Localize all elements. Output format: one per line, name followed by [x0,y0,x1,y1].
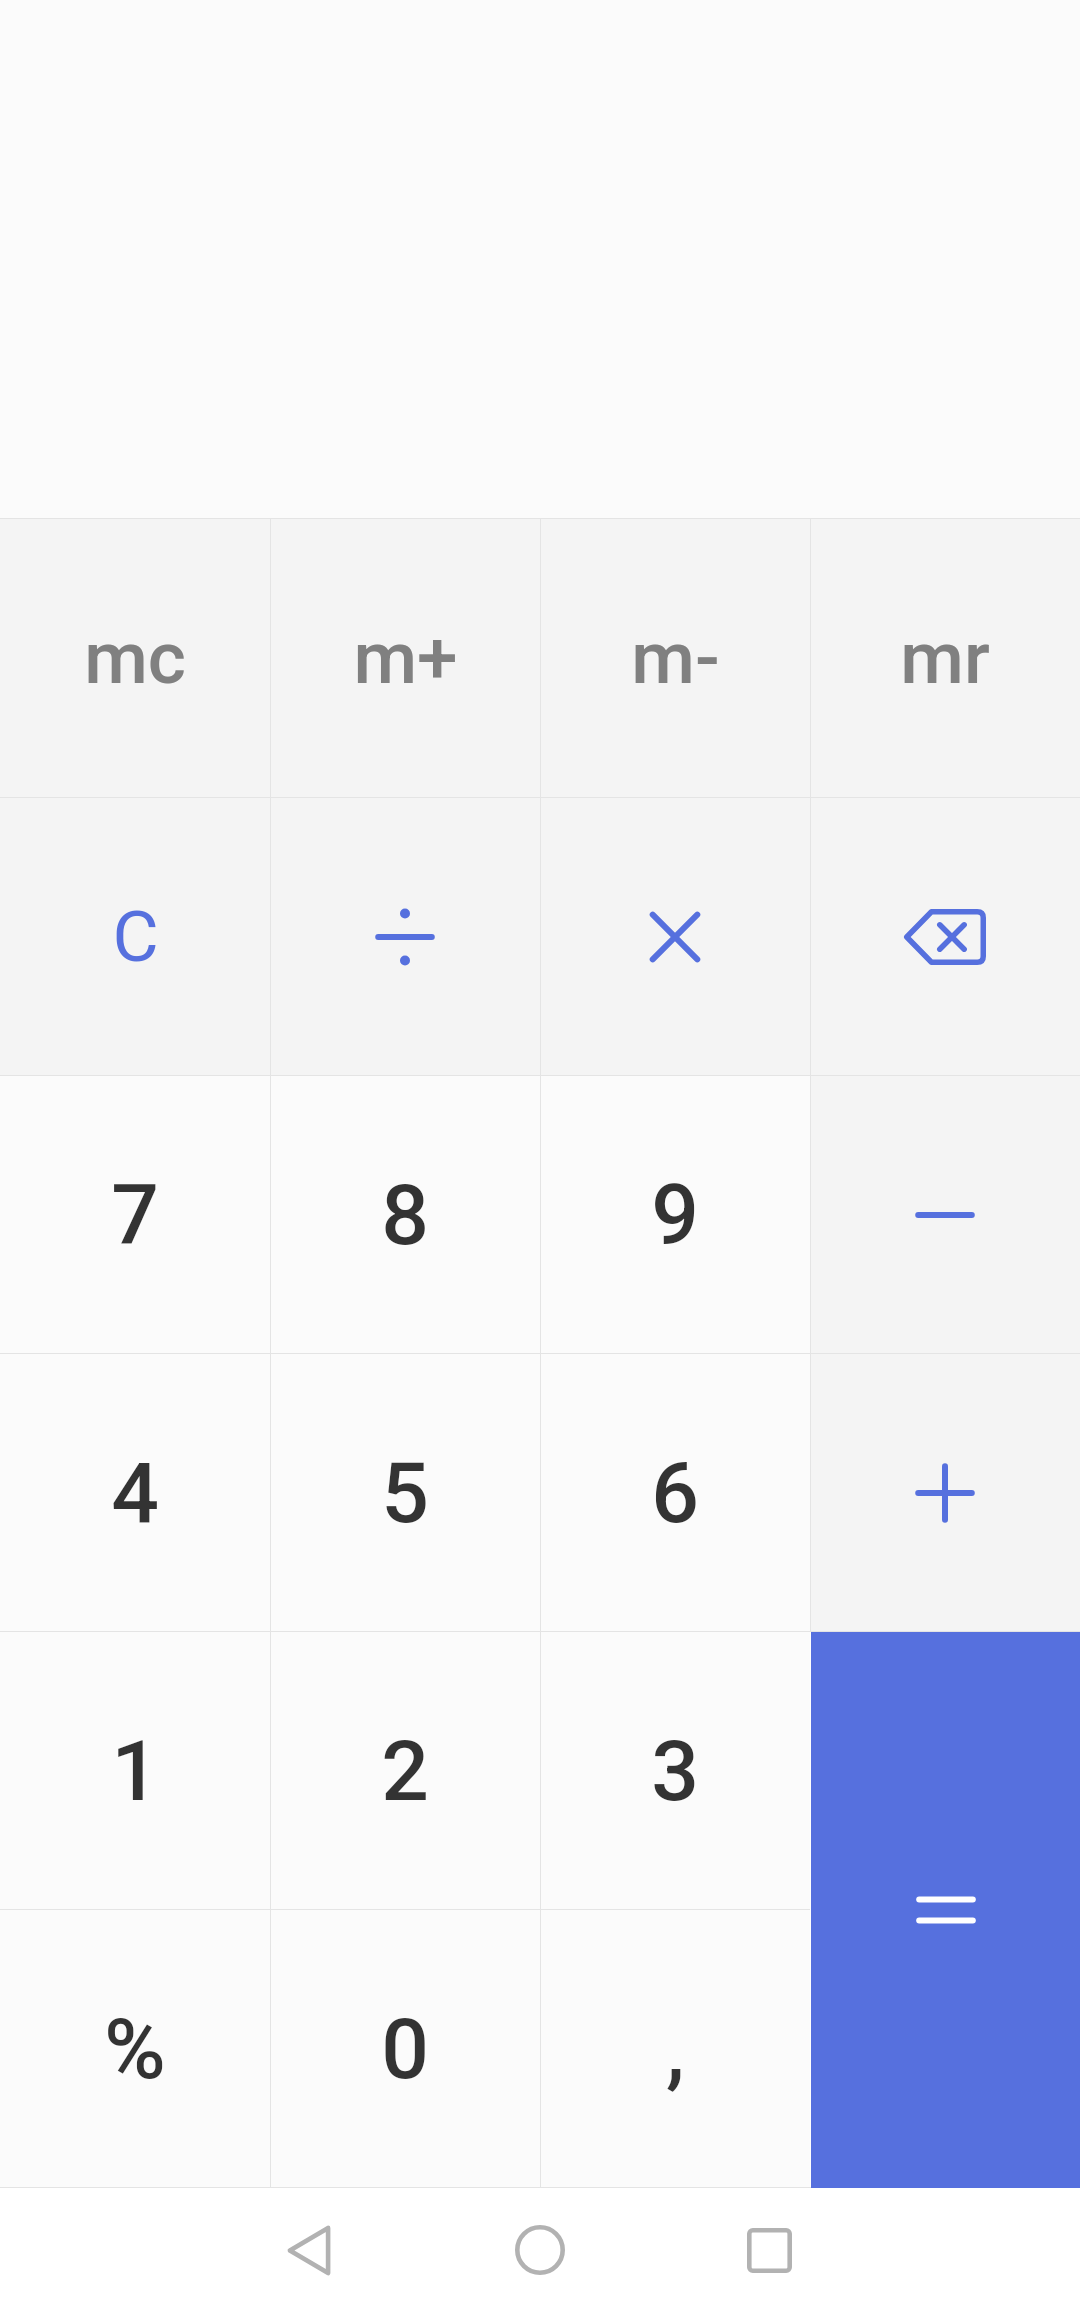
button[interactable]: mc [0,519,270,797]
button[interactable]: m+ [270,519,540,797]
button[interactable]: 0 [270,1910,540,2187]
button[interactable]: Minus [810,1076,1080,1353]
staticText: mc [84,615,186,701]
button[interactable]: Recents [707,2188,831,2312]
button[interactable]: Multiply [540,798,810,1075]
button[interactable]: m- [540,519,810,797]
button[interactable]: Equals [811,1632,1080,2188]
button[interactable]: % [0,1910,270,2187]
button[interactable]: 3 [540,1632,810,1909]
staticText: 3 [651,1722,699,1820]
button[interactable]: Divide [270,798,540,1075]
button[interactable]: 7 [0,1076,270,1353]
staticText: 0 [381,2000,429,2098]
staticText: 5 [381,1444,429,1542]
staticText: 7 [111,1166,159,1264]
button[interactable]: 1 [0,1632,270,1909]
button[interactable]: Plus [810,1354,1080,1631]
button[interactable]: , [540,1910,810,2187]
staticText: m+ [353,615,458,701]
staticText: 8 [381,1166,429,1264]
button[interactable]: Home [478,2188,602,2312]
button[interactable]: 4 [0,1354,270,1631]
button[interactable]: mr [810,519,1080,797]
button[interactable]: 2 [270,1632,540,1909]
staticText: 9 [651,1166,699,1264]
button[interactable]: C [0,798,270,1075]
staticText: mr [900,615,990,701]
staticText: 1 [111,1722,159,1820]
button[interactable]: 6 [540,1354,810,1631]
staticText: 6 [651,1444,699,1542]
staticText: m- [631,615,720,701]
staticText: 2 [381,1722,429,1820]
button[interactable]: 8 [270,1076,540,1353]
button[interactable]: 5 [270,1354,540,1631]
staticText: % [104,2000,166,2098]
button[interactable]: Back [247,2188,371,2312]
staticText: , [666,2000,685,2098]
staticText: C [112,895,159,978]
button[interactable]: Backspace [810,798,1080,1075]
staticText: 4 [111,1444,159,1542]
button[interactable]: 9 [540,1076,810,1353]
